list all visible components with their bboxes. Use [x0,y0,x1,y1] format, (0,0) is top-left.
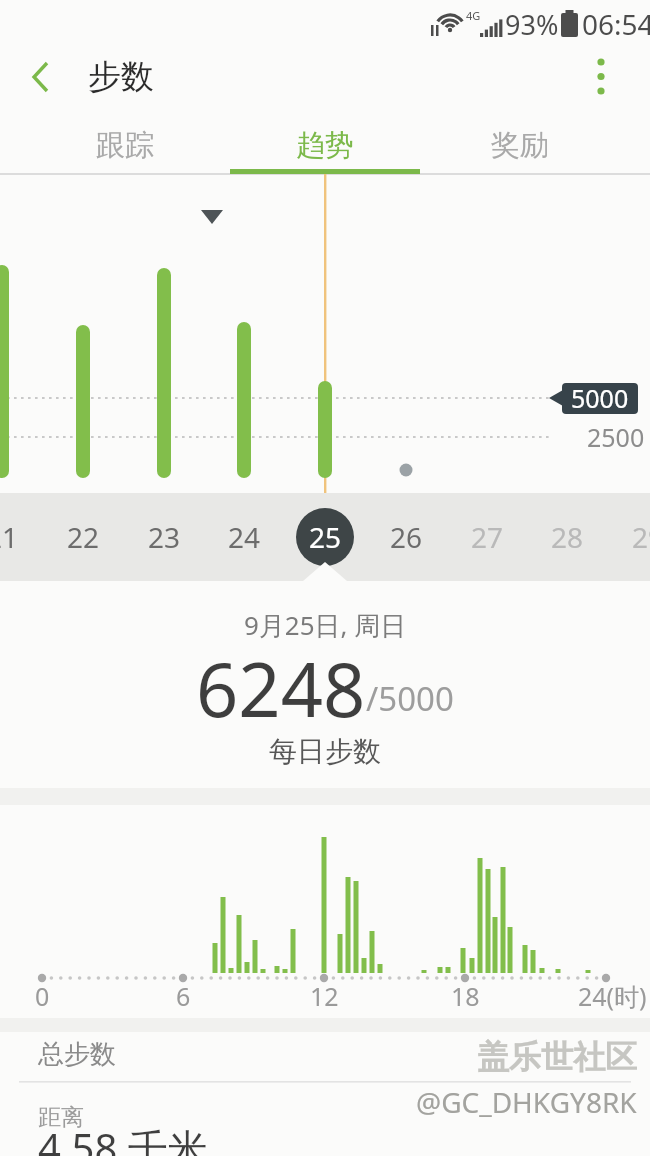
staticText: 9月25日, 周日 [244,607,407,643]
button[interactable]: 26 [368,497,444,577]
staticText: 24 [228,518,261,556]
staticText: 06:54 [582,5,650,43]
button[interactable]: 24 [206,497,282,577]
button[interactable]: 21 [0,497,40,577]
staticText: 2500 [587,420,645,454]
staticText: 12 [310,979,339,1013]
staticText: 22 [67,518,100,556]
button[interactable]: 奖励 [430,115,610,175]
staticText: 5000 [571,381,629,415]
staticText: 步数 [88,56,154,98]
staticText: 25 [309,518,342,556]
staticText: 6 [176,979,191,1013]
staticText: 23 [148,518,181,556]
staticText: 总步数 [38,1038,116,1071]
staticText: 27 [471,518,504,556]
staticText: 跟踪 [96,127,154,164]
staticText: 0 [35,979,50,1013]
staticText: 18 [451,979,480,1013]
staticText: 26 [390,518,423,556]
staticText: 93% [505,6,559,43]
button[interactable] [20,55,65,100]
staticText: 奖励 [491,127,549,164]
button[interactable]: 趋势 [235,115,415,175]
staticText: 趋势 [296,127,354,164]
button[interactable] [580,55,625,100]
staticText: 4G [466,8,481,23]
staticText: 盖乐世社区 [477,1037,637,1077]
staticText: 6248 [196,638,366,733]
button[interactable]: 27 [449,497,525,577]
staticText: 29 [632,518,650,556]
button[interactable]: 28 [529,497,605,577]
button[interactable]: 跟踪 [35,115,215,175]
staticText: @GC_DHKGY8RK [416,1083,637,1121]
button[interactable]: 23 [126,497,202,577]
staticText: /5000 [366,676,454,721]
staticText: 每日步数 [269,734,381,769]
button[interactable]: 29 [610,497,650,577]
staticText: 21 [0,518,19,556]
staticText: 4.58 千米 [38,1120,208,1156]
staticText: 24(时) [578,979,647,1013]
button[interactable]: 22 [45,497,121,577]
button[interactable]: 25 [287,497,363,577]
staticText: 距离 [38,1103,84,1132]
staticText: 28 [551,518,584,556]
